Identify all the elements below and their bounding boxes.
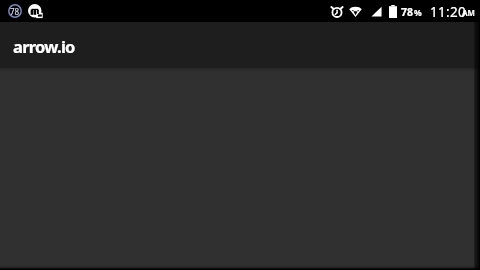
other: Wi-Fi connected [349,6,362,17]
staticText: % [414,7,422,19]
staticText: 78 [10,6,20,17]
other: Mobile signal [371,6,382,17]
other: Mastodon notification [28,4,43,19]
staticText: 11:20 [430,3,467,21]
button[interactable]: arrow.io [0,22,480,68]
other: 78 notifications [8,4,22,18]
staticText: AM [462,7,476,18]
staticText: arrow.io [13,35,75,57]
other: Battery 78 percent [389,5,397,18]
other: Alarm set [332,6,342,17]
staticText: 78 [401,5,414,19]
